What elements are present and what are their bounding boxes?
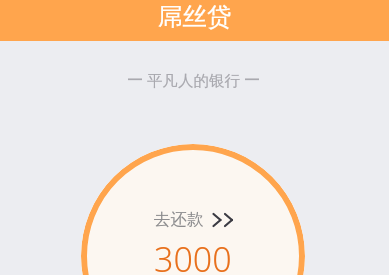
staticText: 平凡人的银行 xyxy=(147,71,240,91)
staticText: 屌丝贷 xyxy=(158,1,232,32)
staticText: 3000 xyxy=(154,236,232,275)
staticText: 去还款 xyxy=(154,209,204,230)
button[interactable]: 去还款 3000 xyxy=(81,144,305,275)
